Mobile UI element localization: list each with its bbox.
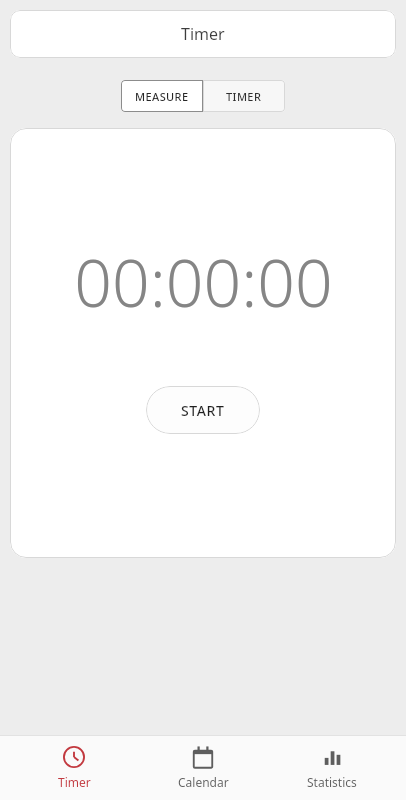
button[interactable]: Timer [10, 10, 396, 58]
staticText: Calendar [178, 774, 229, 790]
staticText: Timer [58, 774, 91, 790]
button[interactable]: TIMER [203, 80, 285, 112]
button[interactable]: Timer [19, 735, 129, 800]
button[interactable]: Calendar [148, 735, 258, 800]
staticText: 00:00:00 [74, 236, 333, 326]
staticText: MEASURE [135, 89, 189, 104]
staticText: TIMER [226, 89, 262, 104]
staticText: Statistics [307, 774, 357, 790]
staticText: Timer [181, 23, 225, 45]
staticText: START [181, 401, 225, 420]
button[interactable]: Statistics [277, 735, 387, 800]
button[interactable]: MEASURE [121, 80, 203, 112]
button[interactable]: START [146, 386, 260, 434]
